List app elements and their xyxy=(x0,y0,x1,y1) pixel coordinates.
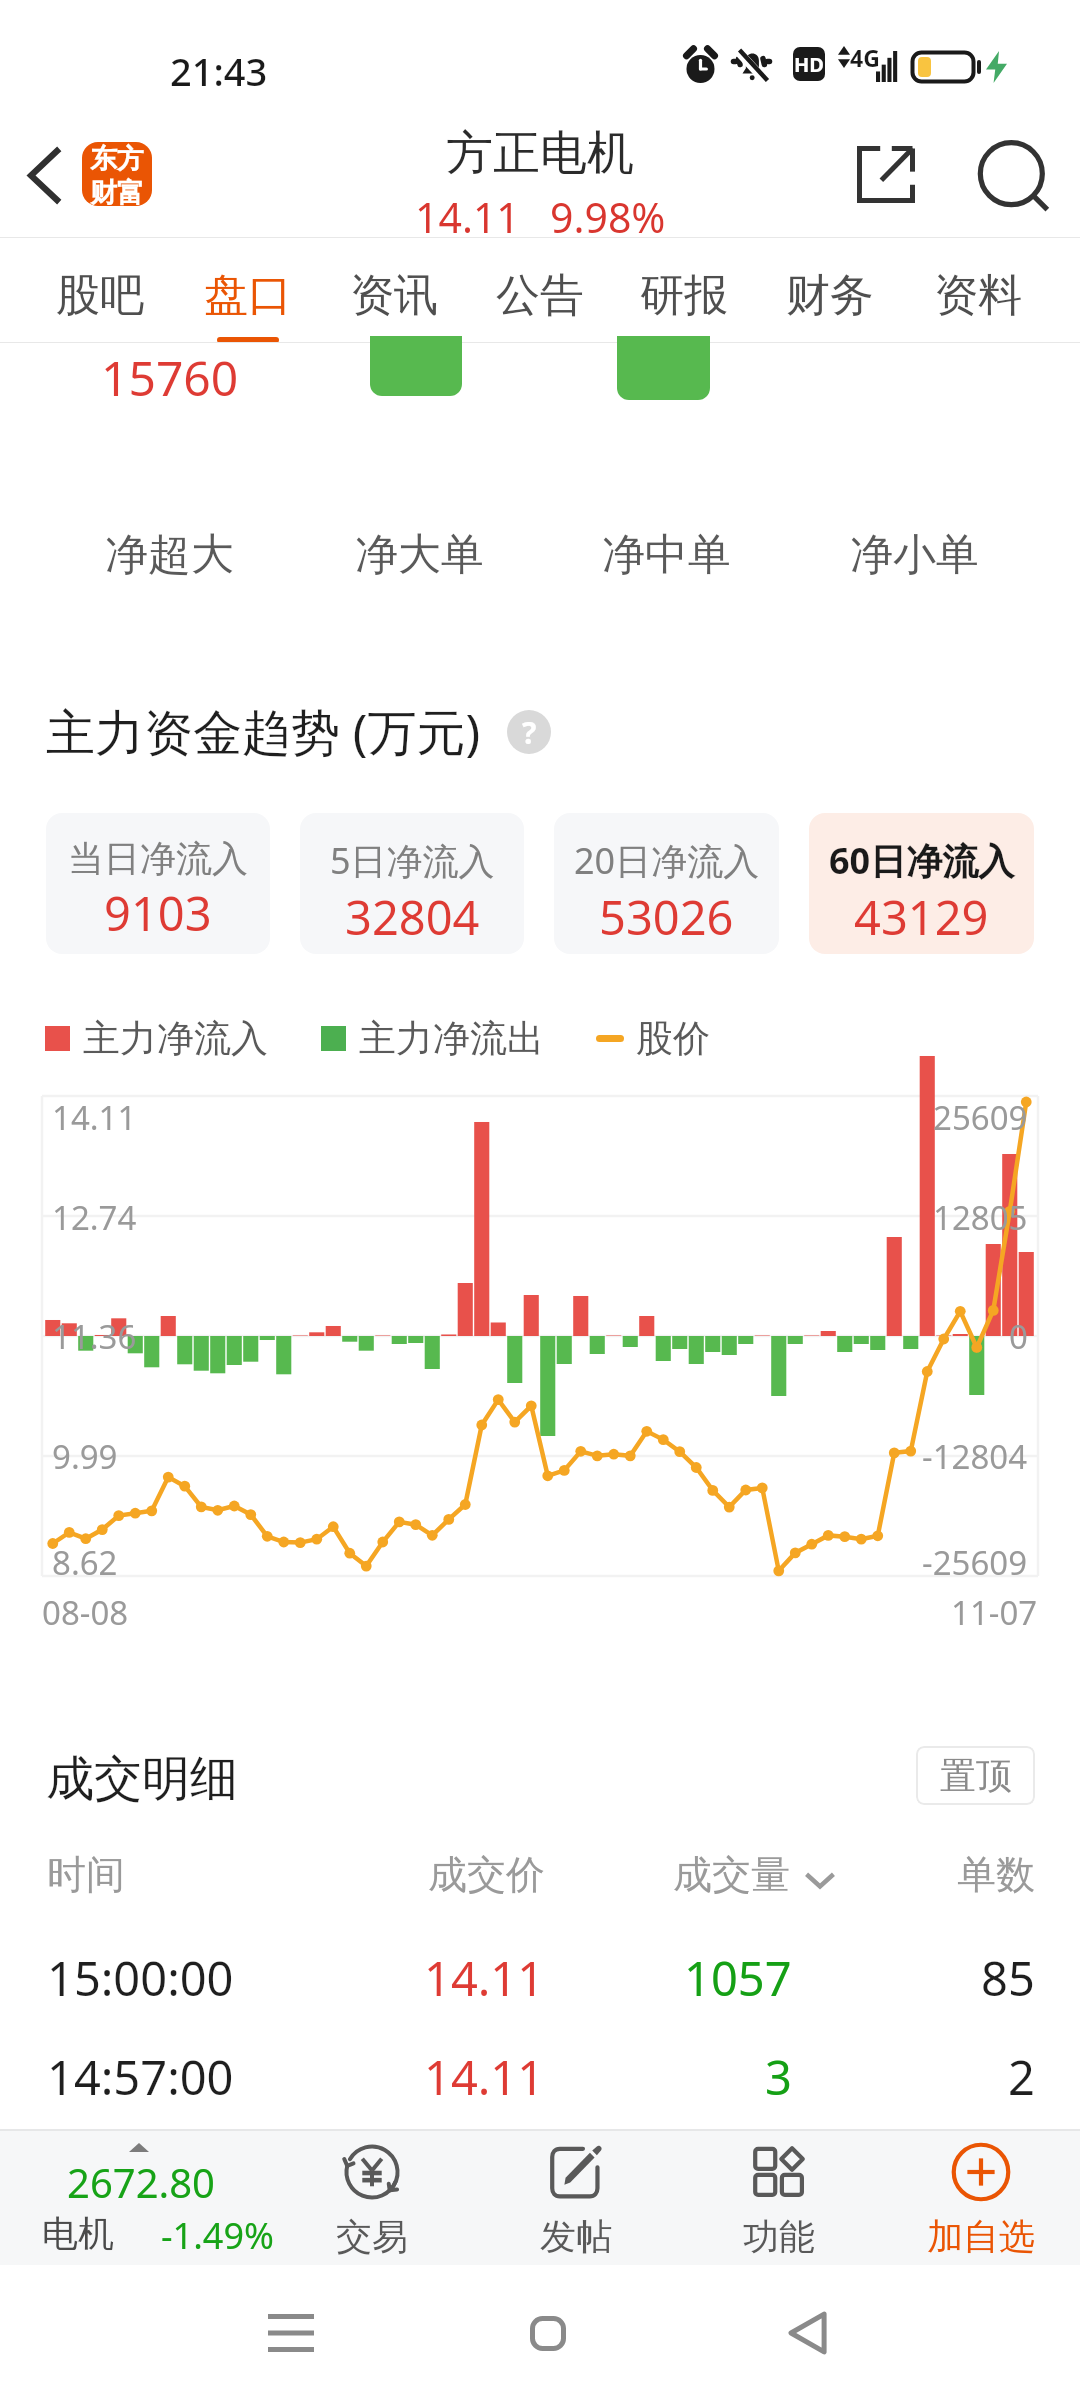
staticText: 9.98% xyxy=(550,189,666,245)
button[interactable]: Search xyxy=(960,122,1072,234)
staticText: 15760 xyxy=(101,345,239,410)
staticText: 2672.80 xyxy=(67,2155,215,2209)
staticText: 20日净流入 xyxy=(574,836,760,885)
staticText: 43129 xyxy=(854,885,989,949)
staticText: 股价 xyxy=(636,1015,710,1062)
staticText: 净大单 xyxy=(355,528,484,582)
staticText: 财富 xyxy=(90,176,144,206)
staticText: 4G xyxy=(850,42,880,73)
staticText: 单数 xyxy=(957,1850,1035,1899)
staticText: 60日净流入 xyxy=(829,836,1015,885)
staticText: 32804 xyxy=(345,885,480,949)
staticText: 14.11 xyxy=(424,2045,545,2109)
staticText: 电机 xyxy=(42,2211,114,2256)
staticText: 12.74 xyxy=(52,1195,137,1240)
staticText: 资料 xyxy=(934,268,1022,323)
staticText: 盘口 xyxy=(204,268,292,323)
staticText: 成交价 xyxy=(428,1850,545,1899)
staticText: -1.49% xyxy=(161,2211,274,2260)
staticText: 功能 xyxy=(743,2214,815,2259)
staticText: 25609 xyxy=(933,1095,1028,1140)
button[interactable]: 公告 xyxy=(470,238,610,343)
staticText: 08-08 xyxy=(42,1590,129,1635)
button[interactable]: 研报 xyxy=(614,238,754,343)
staticText: 15:00:00 xyxy=(47,1946,234,2010)
button[interactable]: 财务 xyxy=(760,238,900,343)
staticText: 当日净流入 xyxy=(68,836,248,881)
staticText: 主力净流出 xyxy=(359,1015,544,1062)
staticText: 21:43 xyxy=(170,45,268,97)
button[interactable]: Help xyxy=(507,710,551,754)
staticText: 净小单 xyxy=(850,528,979,582)
button[interactable]: 加自选 xyxy=(886,2129,1076,2266)
button[interactable]: 发帖 xyxy=(481,2129,671,2266)
staticText: HD xyxy=(794,51,824,78)
button[interactable]: 功能 xyxy=(684,2129,874,2266)
staticText: 研报 xyxy=(640,268,728,323)
staticText: -12804 xyxy=(922,1434,1028,1479)
button[interactable]: 资料 xyxy=(908,238,1048,343)
staticText: 股吧 xyxy=(56,268,144,323)
staticText: 14:57:00 xyxy=(47,2045,234,2109)
staticText: 发帖 xyxy=(540,2214,612,2259)
button[interactable]: Back xyxy=(757,2283,857,2383)
button[interactable]: 交易 xyxy=(277,2129,467,2266)
staticText: 财务 xyxy=(786,268,874,323)
button[interactable]: 5日净流入 xyxy=(300,813,524,954)
staticText: 9103 xyxy=(104,881,212,945)
staticText: 53026 xyxy=(599,885,734,949)
button[interactable]: Home xyxy=(498,2283,598,2383)
staticText: 主力净流入 xyxy=(83,1015,268,1062)
staticText: 9.99 xyxy=(52,1434,118,1479)
staticText: 2 xyxy=(1008,2045,1035,2109)
staticText: 11.36 xyxy=(52,1314,137,1359)
button[interactable]: 2672.80 xyxy=(0,2131,300,2268)
staticText: 85 xyxy=(981,1946,1035,2010)
staticText: 12805 xyxy=(933,1195,1028,1240)
staticText: 成交明细 xyxy=(46,1749,238,1809)
staticText: ? xyxy=(522,712,537,753)
staticText: 1057 xyxy=(684,1946,792,2010)
staticText: 成交量 xyxy=(673,1850,790,1899)
button[interactable]: 盘口 xyxy=(178,238,318,343)
button[interactable]: 置顶 xyxy=(916,1746,1035,1805)
button[interactable]: 60日净流入 xyxy=(809,813,1034,954)
staticText: -25609 xyxy=(922,1540,1028,1585)
button[interactable]: Menu xyxy=(241,2283,341,2383)
staticText: 资讯 xyxy=(350,268,438,323)
button[interactable]: Share xyxy=(830,118,942,230)
staticText: 0 xyxy=(1009,1314,1028,1359)
staticText: 方正电机 xyxy=(446,124,634,183)
staticText: 净中单 xyxy=(602,528,731,582)
staticText: 东方 xyxy=(90,142,144,176)
staticText: 公告 xyxy=(496,268,584,323)
staticText: 14.11 xyxy=(52,1095,137,1140)
button[interactable]: 当日净流入 xyxy=(46,813,270,954)
staticText: 11-07 xyxy=(951,1590,1038,1635)
staticText: 交易 xyxy=(336,2214,408,2259)
button[interactable]: Back xyxy=(0,131,88,219)
button[interactable]: 14:57:00 xyxy=(0,2017,1080,2103)
staticText: 加自选 xyxy=(927,2214,1035,2259)
staticText: 主力资金趋势 (万元) xyxy=(46,698,481,765)
staticText: 净超大 xyxy=(105,528,234,582)
staticText: 14.11 xyxy=(415,189,520,245)
button[interactable]: East Money xyxy=(82,142,152,206)
staticText: 8.62 xyxy=(52,1540,118,1585)
button[interactable]: 股吧 xyxy=(30,238,170,343)
staticText: 14.11 xyxy=(424,1946,545,2010)
staticText: 置顶 xyxy=(940,1753,1012,1798)
button[interactable]: 资讯 xyxy=(324,238,464,343)
staticText: 5日净流入 xyxy=(330,836,495,885)
button[interactable]: 20日净流入 xyxy=(554,813,779,954)
button[interactable]: 15:00:00 xyxy=(0,1918,1080,2004)
staticText: 时间 xyxy=(47,1850,125,1899)
staticText: 3 xyxy=(765,2045,792,2109)
